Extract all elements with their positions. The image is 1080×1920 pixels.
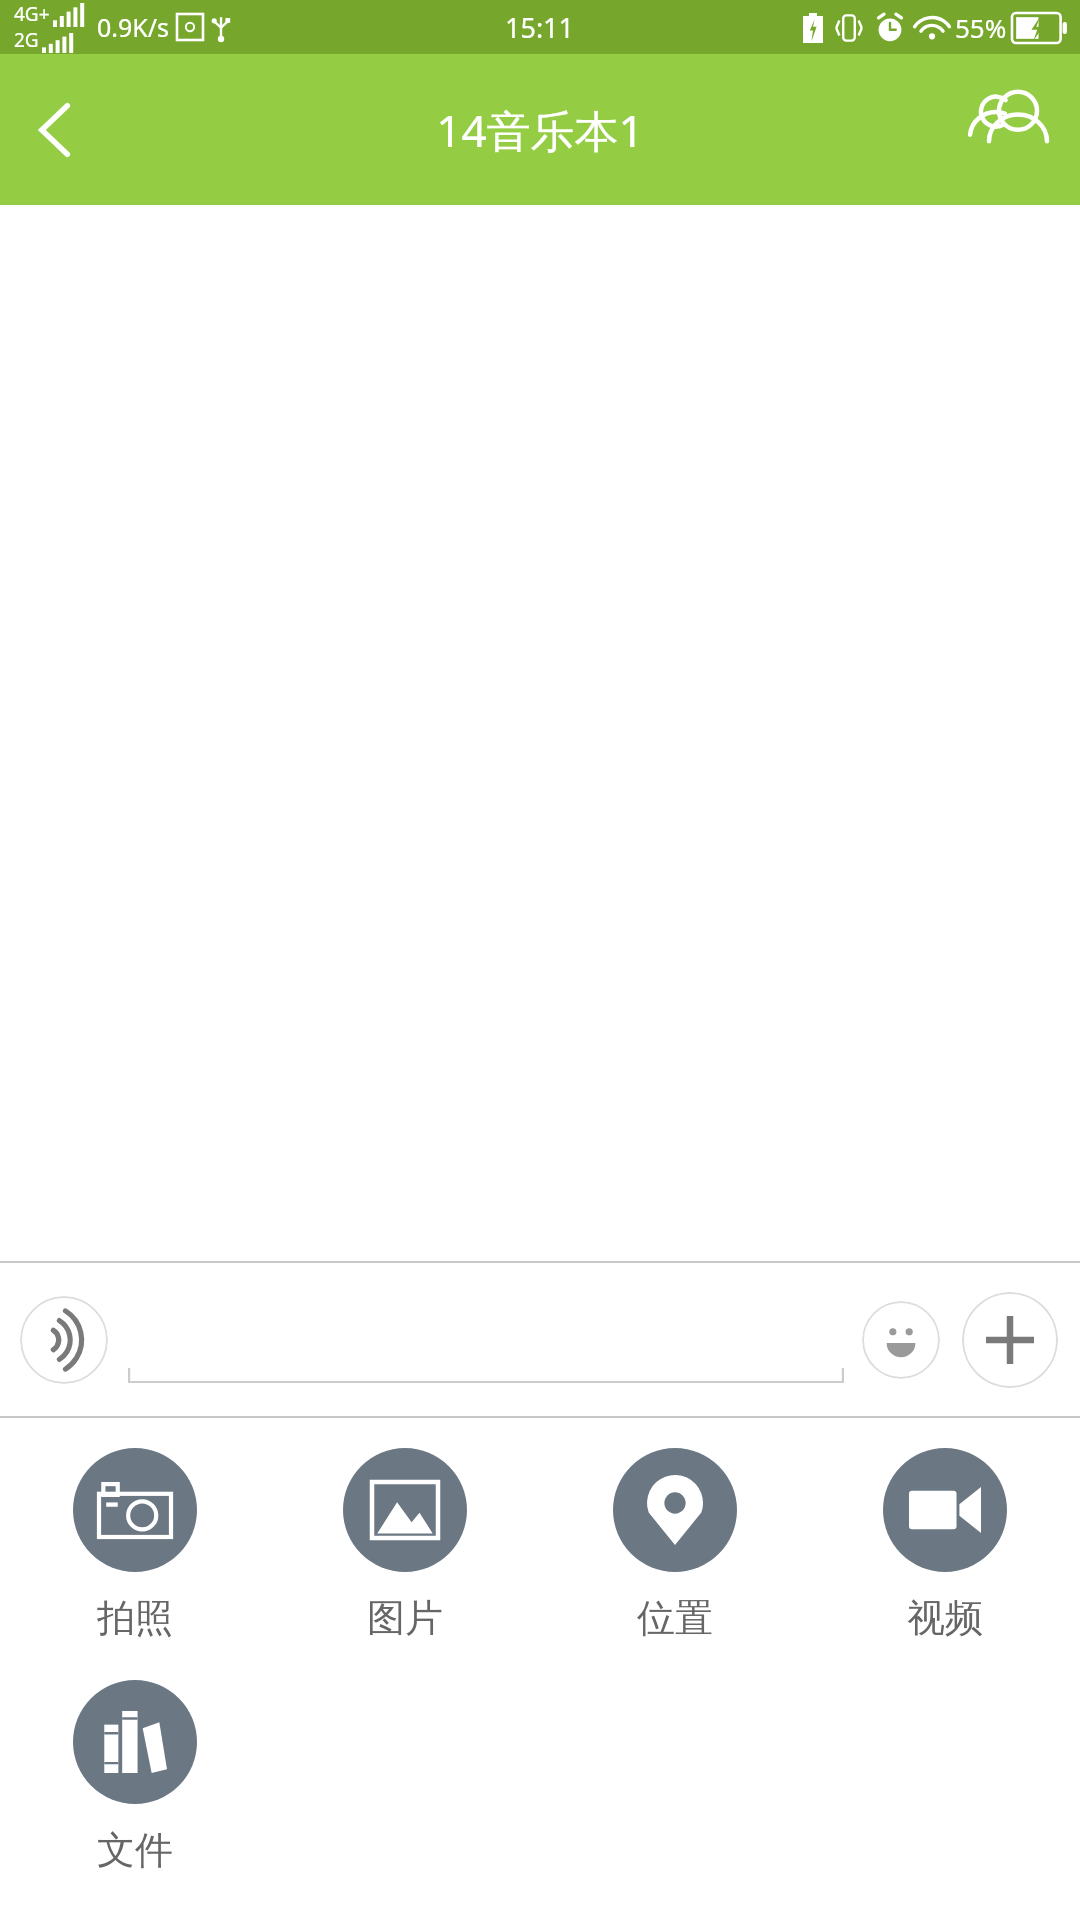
- button[interactable]: 位置: [540, 1444, 810, 1646]
- staticText: 位置: [637, 1594, 713, 1642]
- staticText: 2G: [14, 27, 39, 53]
- button[interactable]: Voice message: [20, 1296, 108, 1384]
- staticText: 视频: [907, 1594, 983, 1642]
- button[interactable]: Back: [0, 54, 110, 205]
- staticText: 图片: [367, 1594, 443, 1642]
- staticText: 4G+: [14, 1, 50, 27]
- staticText: 拍照: [97, 1594, 173, 1642]
- button[interactable]: Members: [940, 54, 1080, 205]
- button[interactable]: 视频: [810, 1444, 1080, 1646]
- staticText: 14音乐本1: [436, 100, 644, 160]
- staticText: 15:11: [505, 9, 575, 46]
- button[interactable]: 文件: [0, 1676, 270, 1878]
- staticText: 文件: [97, 1826, 173, 1874]
- button[interactable]: Emoji: [862, 1301, 940, 1379]
- button[interactable]: 拍照: [0, 1444, 270, 1646]
- staticText: 55%: [955, 10, 1007, 45]
- staticText: 0.9K/s: [97, 10, 170, 44]
- button[interactable]: [128, 1290, 844, 1390]
- button[interactable]: More attachments: [962, 1292, 1058, 1388]
- button[interactable]: 图片: [270, 1444, 540, 1646]
